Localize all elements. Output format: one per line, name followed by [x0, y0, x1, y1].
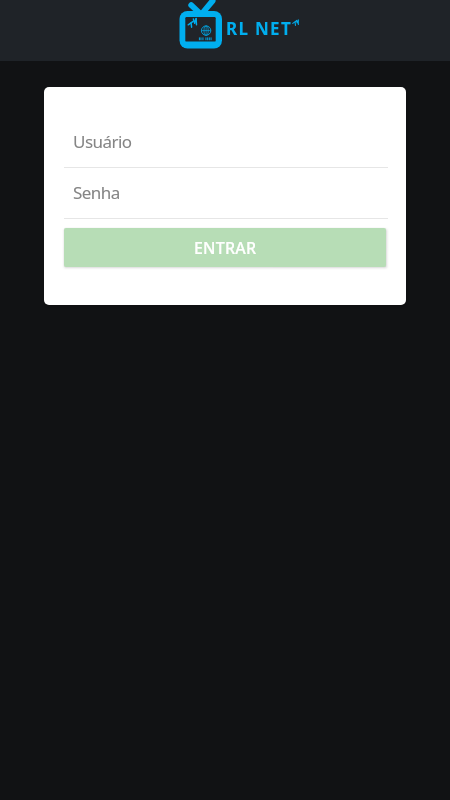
staticText: RL NET — [226, 17, 293, 40]
button[interactable]: Senha — [64, 168, 388, 219]
staticText: Senha — [73, 181, 120, 204]
staticText: ENTRAR — [194, 237, 257, 259]
button[interactable]: Usuário — [64, 117, 388, 168]
button[interactable]: ENTRAR — [64, 228, 386, 267]
button[interactable]: RL NET logo — [178, 0, 300, 61]
other: RL NET logo — [178, 0, 226, 50]
staticText: Usuário — [73, 130, 132, 153]
other: TV — [292, 19, 299, 31]
